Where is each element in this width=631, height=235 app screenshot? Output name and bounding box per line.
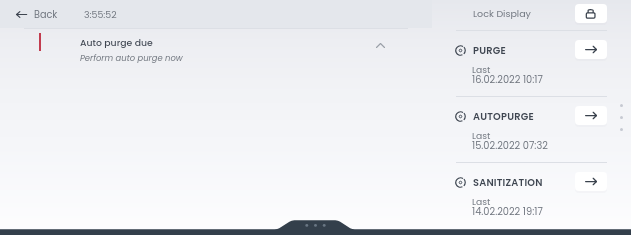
staticText: 15.02.2022 07:32: [472, 139, 548, 153]
staticText: 14.02.2022 19:17: [472, 205, 543, 219]
button[interactable]: AUTOPURGE: [432, 96, 631, 161]
button[interactable]: SANITIZATION: [432, 162, 631, 227]
button[interactable]: Collapse: [370, 35, 390, 55]
staticText: 16.02.2022 10:17: [472, 73, 543, 87]
staticText: AUTOPURGE: [473, 110, 534, 124]
staticText: Auto purge due: [80, 36, 153, 49]
button[interactable]: PURGE: [432, 30, 631, 95]
staticText: SANITIZATION: [473, 176, 543, 190]
button[interactable]: Back: [10, 4, 64, 24]
button[interactable]: Start SANITIZATION: [575, 172, 607, 191]
staticText: Perform auto purge now: [80, 52, 183, 64]
button[interactable]: Lock display: [575, 4, 607, 23]
staticText: 3:55:52: [84, 8, 117, 21]
staticText: Back: [34, 8, 58, 22]
staticText: Last: [472, 195, 491, 208]
staticText: Last: [472, 63, 491, 76]
staticText: PURGE: [473, 44, 506, 58]
staticText: Lock Display: [473, 7, 531, 20]
button[interactable]: Start AUTOPURGE: [575, 106, 607, 125]
button[interactable]: Auto purge due: [0, 29, 432, 65]
staticText: Last: [472, 129, 491, 142]
button[interactable]: Start PURGE: [575, 40, 607, 59]
button[interactable]: Lock Display: [432, 0, 631, 30]
